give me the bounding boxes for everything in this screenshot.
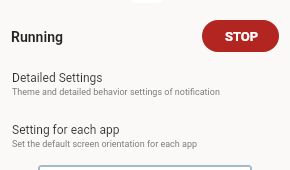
button[interactable]: Detailed Settings <box>0 62 290 102</box>
staticText: Setting for each app <box>12 123 120 137</box>
staticText: Running <box>11 29 64 45</box>
button[interactable]: STOP <box>202 20 279 52</box>
button[interactable]: Setting for each app <box>0 114 290 154</box>
staticText: Theme and detailed behavior settings of … <box>12 87 220 98</box>
staticText: Detailed Settings <box>12 71 103 85</box>
staticText: STOP <box>225 29 259 44</box>
button[interactable]: App list card <box>38 165 252 170</box>
staticText: Set the default screen orientation for e… <box>12 139 198 150</box>
